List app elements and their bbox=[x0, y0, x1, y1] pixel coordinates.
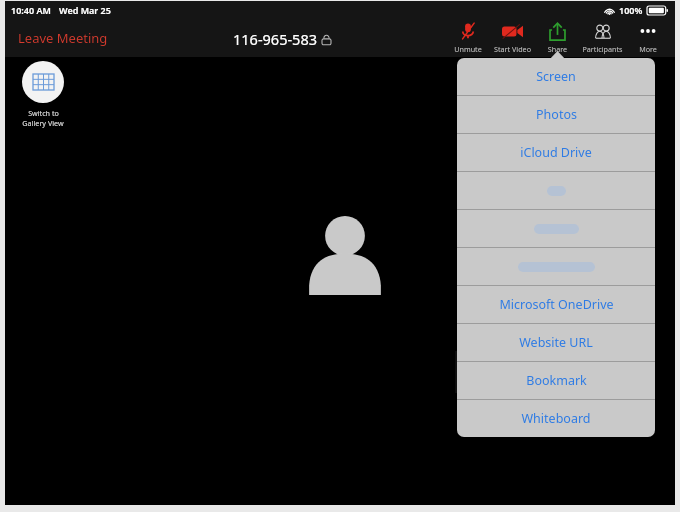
button[interactable]: Leave Meeting bbox=[14, 24, 112, 52]
staticText: 116-965-583 bbox=[233, 29, 317, 49]
staticText: Website URL bbox=[519, 334, 593, 351]
button[interactable]: Whiteboard bbox=[457, 400, 655, 437]
staticText: 100% bbox=[619, 4, 643, 16]
staticText: Wed Mar 25 bbox=[59, 4, 111, 16]
staticText: Bookmark bbox=[526, 372, 587, 389]
staticText: Photos bbox=[536, 106, 577, 123]
staticText: iCloud Drive bbox=[520, 144, 592, 161]
staticText: Gallery View bbox=[22, 118, 64, 128]
button[interactable]: Website URL bbox=[457, 324, 655, 361]
button[interactable] bbox=[457, 210, 655, 247]
button[interactable]: iCloud Drive bbox=[457, 134, 655, 171]
staticText: Start Video bbox=[494, 44, 531, 54]
staticText: Switch to bbox=[28, 108, 59, 118]
button[interactable]: Photos bbox=[457, 96, 655, 133]
button[interactable]: Switch to Gallery View bbox=[13, 61, 73, 128]
button[interactable]: Screen bbox=[457, 58, 655, 95]
button[interactable] bbox=[457, 248, 655, 285]
staticText: Whiteboard bbox=[521, 410, 591, 427]
staticText: Microsoft OneDrive bbox=[499, 296, 614, 313]
button[interactable]: Participants bbox=[580, 21, 625, 54]
staticText: Share Content bbox=[535, 44, 580, 57]
button[interactable]: Unmute bbox=[445, 21, 490, 54]
staticText: Participants bbox=[582, 44, 623, 54]
staticText: Screen bbox=[536, 68, 576, 85]
button[interactable]: More bbox=[625, 21, 670, 54]
staticText: Leave Meeting bbox=[18, 29, 108, 47]
staticText: 10:40 AM bbox=[11, 4, 51, 16]
button[interactable]: Bookmark bbox=[457, 362, 655, 399]
staticText: More bbox=[639, 44, 657, 54]
button[interactable]: Share Content bbox=[535, 21, 580, 57]
button[interactable]: Start Video bbox=[490, 21, 535, 54]
button[interactable]: Microsoft OneDrive bbox=[457, 286, 655, 323]
staticText: Unmute bbox=[454, 44, 482, 54]
